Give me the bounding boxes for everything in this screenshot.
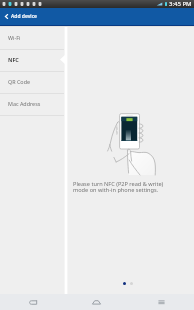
- staticText: NFC: [8, 56, 19, 63]
- button[interactable]: NFC: [0, 50, 64, 72]
- button[interactable]: QR Code: [0, 72, 64, 94]
- button[interactable]: Add device: [0, 8, 194, 25]
- button[interactable]: Mac Address: [0, 94, 64, 116]
- staticText: 3:45 PM: [169, 0, 192, 8]
- staticText: QR Code: [8, 78, 30, 85]
- staticText: Please turn NFC (P2P read & write) mode …: [73, 180, 179, 194]
- staticText: Mac Address: [8, 100, 41, 107]
- staticText: Wi-Fi: [8, 34, 21, 41]
- button[interactable]: Recent apps: [129, 294, 194, 310]
- button[interactable]: Back: [0, 294, 64, 310]
- staticText: Add device: [11, 13, 37, 20]
- button[interactable]: Home: [64, 294, 129, 310]
- button[interactable]: Wi-Fi: [0, 28, 64, 50]
